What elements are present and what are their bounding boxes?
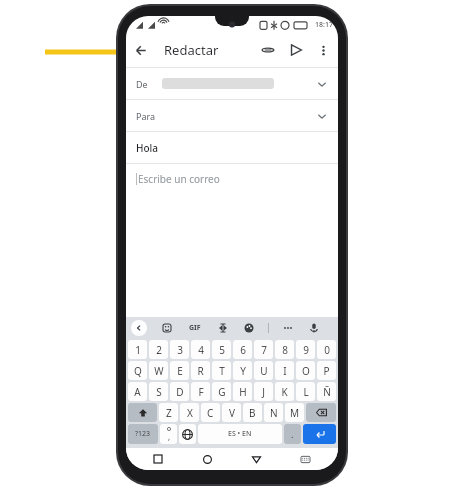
button[interactable]: E	[170, 361, 189, 380]
button[interactable]: Q	[128, 361, 147, 380]
button[interactable]: Recent apps	[148, 449, 168, 469]
button[interactable]: Change language	[179, 424, 196, 444]
button[interactable]: R	[191, 361, 210, 380]
button[interactable]: 2	[149, 340, 168, 359]
button[interactable]: 3	[170, 340, 189, 359]
button[interactable]: 5	[212, 340, 231, 359]
staticText: 5	[219, 343, 225, 357]
staticText: ES • EN	[228, 429, 252, 439]
button[interactable]: Enter	[303, 424, 336, 444]
button[interactable]: I	[275, 361, 294, 380]
button[interactable]: Attach file	[254, 36, 282, 64]
button[interactable]: V	[222, 403, 241, 422]
button[interactable]: Escribe un correo	[126, 163, 338, 194]
button[interactable]: Ñ	[317, 382, 336, 401]
staticText: S	[156, 385, 162, 399]
button[interactable]: Back	[126, 35, 156, 65]
button[interactable]: Hide keyboard	[295, 449, 315, 469]
button[interactable]: ES • EN	[198, 424, 282, 444]
staticText: 7	[261, 343, 267, 357]
button[interactable]: X	[180, 403, 199, 422]
staticText: P	[323, 364, 330, 378]
button[interactable]: O	[296, 361, 315, 380]
staticText: 0	[324, 343, 330, 357]
staticText: O	[302, 364, 310, 378]
staticText: G	[218, 385, 226, 399]
staticText: E	[177, 364, 183, 378]
button[interactable]: Para	[126, 99, 338, 131]
button[interactable]: Collapse toolbar	[131, 320, 147, 336]
button[interactable]: D	[170, 382, 189, 401]
button[interactable]: Shift	[128, 403, 157, 422]
staticText: Escribe un correo	[138, 172, 220, 186]
button[interactable]: 0	[317, 340, 336, 359]
button[interactable]: Y	[233, 361, 252, 380]
button[interactable]: Hola	[126, 131, 338, 163]
staticText: F	[198, 385, 204, 399]
staticText: K	[281, 385, 288, 399]
button[interactable]: 4	[191, 340, 210, 359]
button[interactable]: N	[264, 403, 283, 422]
button[interactable]: F	[191, 382, 210, 401]
button[interactable]: K	[275, 382, 294, 401]
staticText: 18:17	[315, 20, 333, 30]
staticText: Q	[134, 364, 142, 378]
button[interactable]: Stickers	[160, 321, 174, 335]
staticText: J	[262, 385, 265, 399]
button[interactable]: B	[243, 403, 262, 422]
button[interactable]: Period	[284, 424, 301, 444]
button[interactable]: S	[149, 382, 168, 401]
staticText: Y	[240, 364, 246, 378]
staticText: 4	[198, 343, 204, 357]
button[interactable]: H	[233, 382, 252, 401]
staticText: T	[219, 364, 225, 378]
staticText: A	[134, 385, 141, 399]
button[interactable]: M	[285, 403, 304, 422]
button[interactable]: W	[149, 361, 168, 380]
staticText: 1	[135, 343, 141, 357]
button[interactable]: 9	[296, 340, 315, 359]
staticText: V	[229, 406, 235, 420]
button[interactable]: More	[281, 321, 295, 335]
button[interactable]: 8	[275, 340, 294, 359]
button[interactable]: Voice input	[307, 321, 321, 335]
button[interactable]: Comma	[160, 424, 177, 444]
button[interactable]: Back	[246, 449, 266, 469]
staticText: 9	[303, 343, 309, 357]
button[interactable]: Backspace	[306, 403, 336, 422]
staticText: U	[260, 364, 268, 378]
staticText: Para	[136, 110, 156, 122]
button[interactable]: GIF	[187, 323, 203, 333]
button[interactable]: L	[296, 382, 315, 401]
staticText: .	[291, 428, 294, 440]
button[interactable]: More options	[310, 37, 336, 63]
button[interactable]: T	[212, 361, 231, 380]
staticText: 6	[240, 343, 246, 357]
staticText: I	[283, 364, 287, 378]
staticText: B	[249, 406, 256, 420]
button[interactable]: U	[254, 361, 273, 380]
staticText: ?123	[135, 429, 151, 439]
staticText: Z	[166, 406, 172, 420]
button[interactable]: ?123	[128, 424, 158, 444]
button[interactable]: J	[254, 382, 273, 401]
staticText: Redactar	[164, 41, 219, 59]
button[interactable]: 1	[128, 340, 147, 359]
button[interactable]: P	[317, 361, 336, 380]
staticText: X	[187, 406, 193, 420]
button[interactable]: Home	[197, 449, 217, 469]
button[interactable]: 7	[254, 340, 273, 359]
button[interactable]: De	[126, 67, 338, 99]
button[interactable]: Z	[159, 403, 178, 422]
button[interactable]: G	[212, 382, 231, 401]
button[interactable]: C	[201, 403, 220, 422]
button[interactable]: 6	[233, 340, 252, 359]
staticText: Ñ	[323, 385, 331, 399]
button[interactable]: Text selection	[216, 321, 230, 335]
button[interactable]: Send	[282, 36, 310, 64]
staticText: 8	[282, 343, 288, 357]
button[interactable]: A	[128, 382, 147, 401]
button[interactable]: Themes	[242, 321, 256, 335]
staticText: D	[176, 385, 184, 399]
staticText: 2	[156, 343, 162, 357]
